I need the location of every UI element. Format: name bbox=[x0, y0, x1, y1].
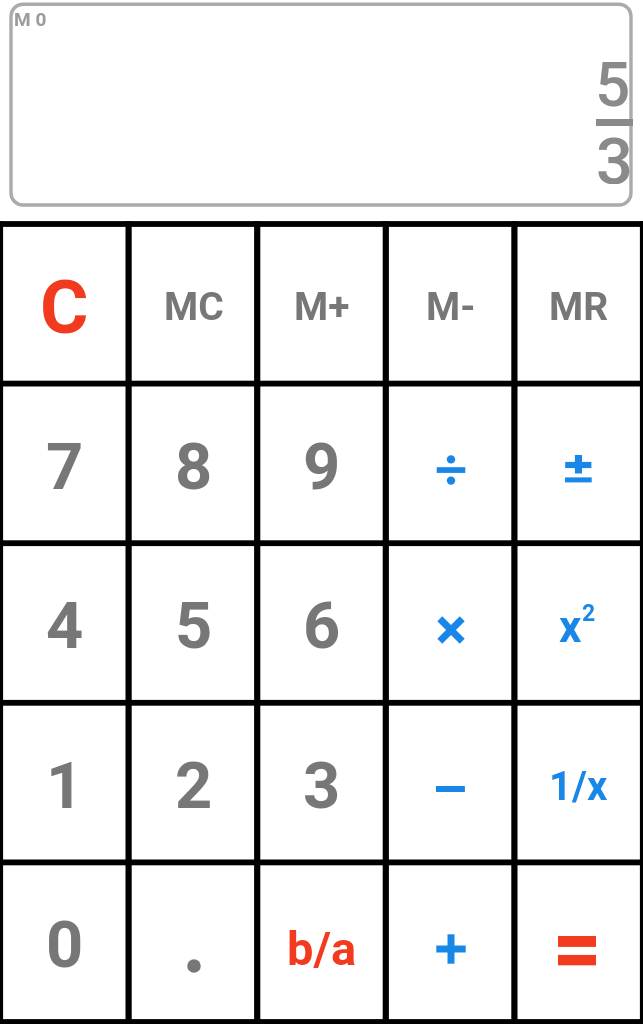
staticText: b/a bbox=[287, 921, 357, 976]
staticText: C bbox=[40, 264, 89, 351]
button[interactable]: 8 bbox=[129, 384, 258, 544]
button[interactable]: 7 bbox=[0, 384, 129, 544]
button[interactable]: MR bbox=[514, 224, 643, 384]
staticText: 2 bbox=[175, 748, 213, 824]
staticText: 8 bbox=[175, 429, 213, 505]
staticText: 3 bbox=[303, 748, 341, 824]
button[interactable]: MC bbox=[129, 224, 258, 384]
button[interactable]: 5 bbox=[129, 543, 258, 703]
button[interactable]: 6 bbox=[257, 543, 386, 703]
button[interactable] bbox=[386, 384, 515, 544]
button[interactable]: 4 bbox=[0, 543, 129, 703]
button[interactable]: x bbox=[514, 543, 643, 703]
button[interactable]: C bbox=[0, 224, 129, 384]
button[interactable] bbox=[129, 862, 258, 1022]
staticText: MC bbox=[164, 284, 224, 330]
staticText: 7 bbox=[46, 429, 84, 505]
button[interactable]: 1/x bbox=[514, 703, 643, 863]
button[interactable]: M- bbox=[386, 224, 515, 384]
button[interactable]: M+ bbox=[257, 224, 386, 384]
button[interactable]: 2 bbox=[129, 703, 258, 863]
staticText: 2 bbox=[582, 600, 596, 627]
button[interactable] bbox=[514, 862, 643, 1022]
staticText: 1/x bbox=[549, 763, 608, 810]
button[interactable]: 1 bbox=[0, 703, 129, 863]
button[interactable] bbox=[386, 543, 515, 703]
staticText: 1 bbox=[46, 748, 84, 824]
staticText: 3 bbox=[596, 124, 633, 184]
button[interactable]: b/a bbox=[257, 862, 386, 1022]
button[interactable] bbox=[386, 703, 515, 863]
staticText: 6 bbox=[303, 588, 341, 664]
button[interactable]: 0 bbox=[0, 862, 129, 1022]
button[interactable]: 9 bbox=[257, 384, 386, 544]
staticText: 0 bbox=[46, 907, 84, 983]
button[interactable]: 3 bbox=[257, 703, 386, 863]
staticText: 5 bbox=[175, 588, 213, 664]
staticText: 5 bbox=[595, 48, 631, 108]
staticText: M 0 bbox=[14, 8, 47, 30]
staticText: M+ bbox=[294, 284, 350, 330]
staticText: 9 bbox=[303, 429, 341, 505]
staticText: M- bbox=[426, 284, 476, 330]
button[interactable] bbox=[386, 862, 515, 1022]
staticText: x bbox=[559, 601, 582, 653]
button[interactable] bbox=[514, 384, 643, 544]
staticText: 4 bbox=[46, 588, 84, 664]
staticText: MR bbox=[549, 284, 609, 330]
